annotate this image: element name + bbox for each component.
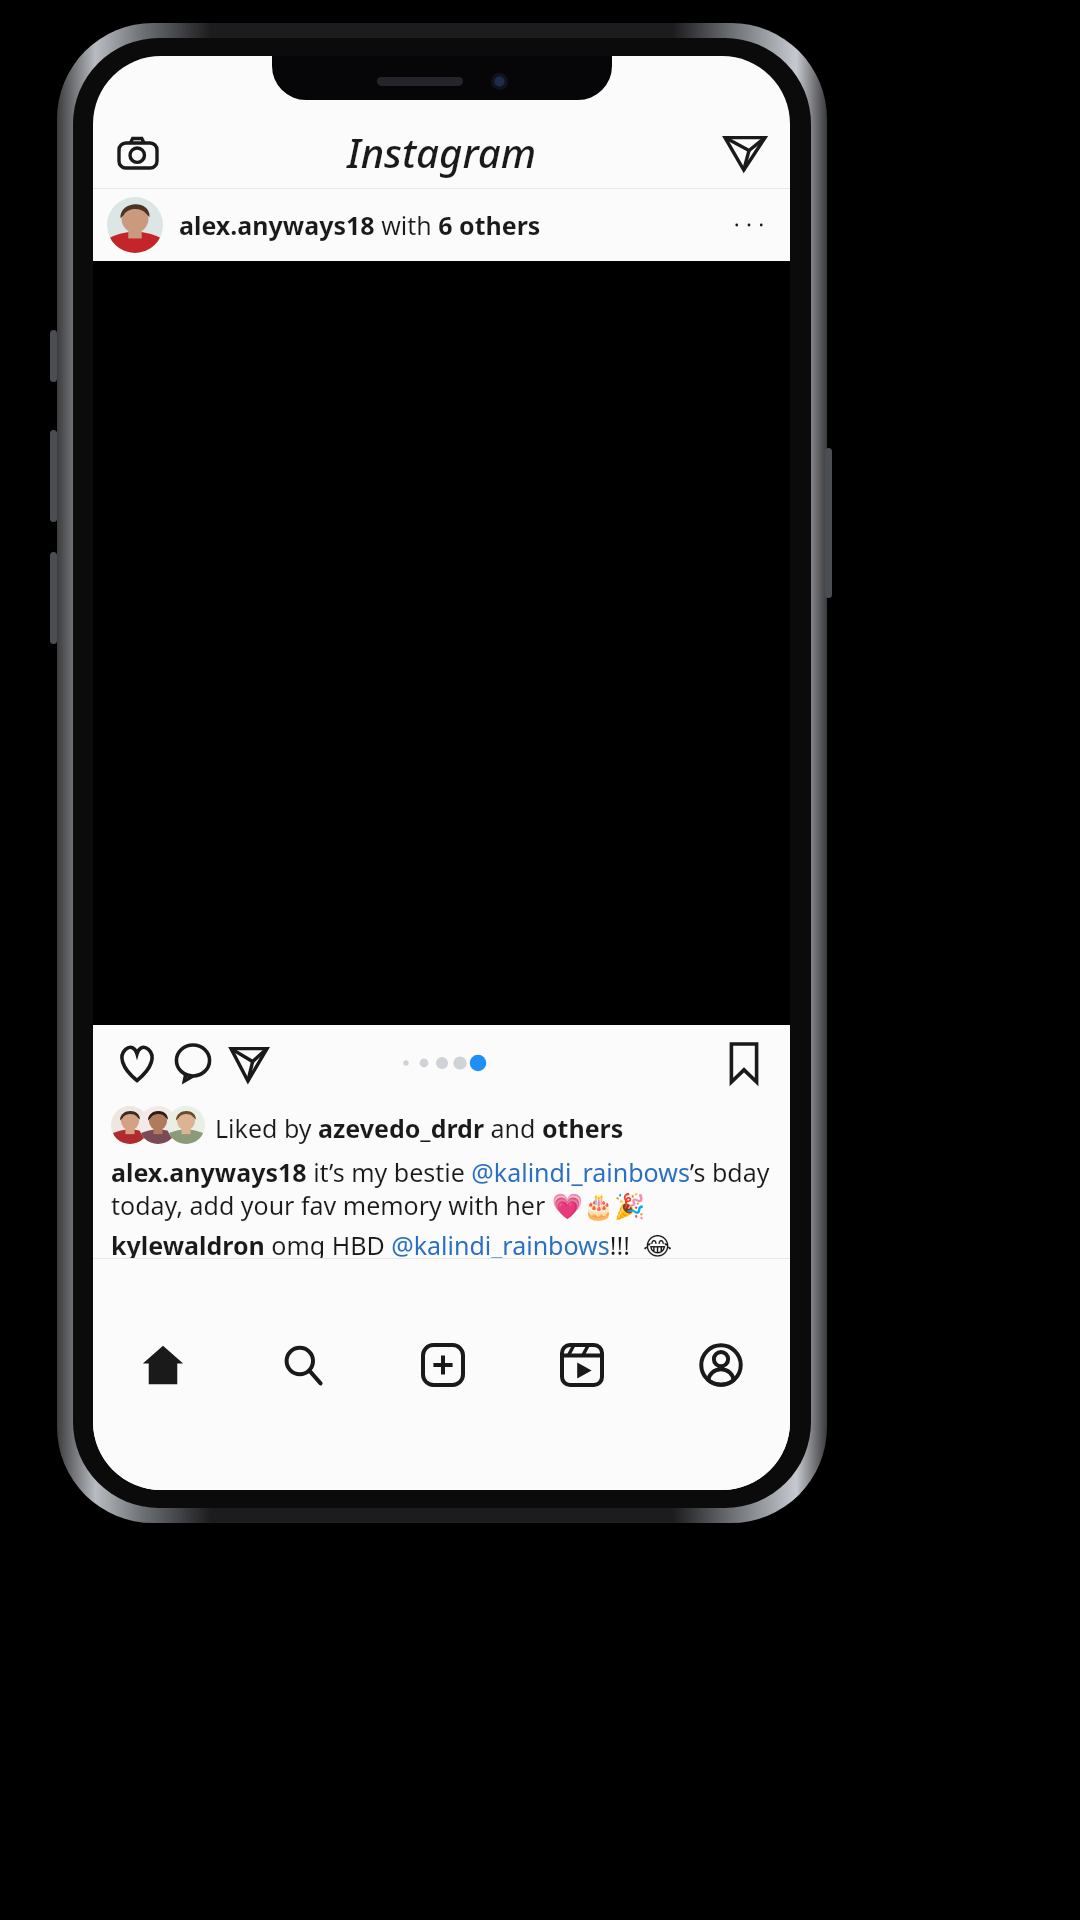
button[interactable]: Home <box>93 1259 233 1490</box>
button[interactable]: More options <box>726 202 772 248</box>
button[interactable]: Liked by azevedo_drdr and others <box>93 1101 790 1155</box>
button[interactable]: Comment <box>165 1035 221 1091</box>
staticText: Instagram <box>347 125 537 179</box>
staticText: alex.anyways18 it’s my bestie @kalindi_r… <box>111 1155 772 1222</box>
button[interactable]: Like <box>109 1035 165 1091</box>
button[interactable]: Search <box>233 1259 373 1490</box>
button[interactable]: Save <box>716 1035 772 1091</box>
button[interactable]: Direct messages <box>718 125 772 179</box>
staticText: alex.anyways18 with 6 others <box>179 208 541 242</box>
button[interactable]: Reels <box>512 1259 651 1490</box>
staticText: kylewaldron omg HBD @kalindi_rainbows!!!… <box>111 1228 673 1258</box>
staticText: Liked by azevedo_drdr and others <box>215 1111 624 1145</box>
button[interactable]: Camera <box>111 125 165 179</box>
button[interactable]: kylewaldron omg HBD @kalindi_rainbows!!!… <box>93 1228 790 1258</box>
button[interactable]: Create <box>373 1259 512 1490</box>
button[interactable]: alex.anyways18 with 6 others <box>93 189 790 261</box>
button[interactable]: Profile <box>651 1259 790 1490</box>
button[interactable]: Share <box>221 1035 277 1091</box>
